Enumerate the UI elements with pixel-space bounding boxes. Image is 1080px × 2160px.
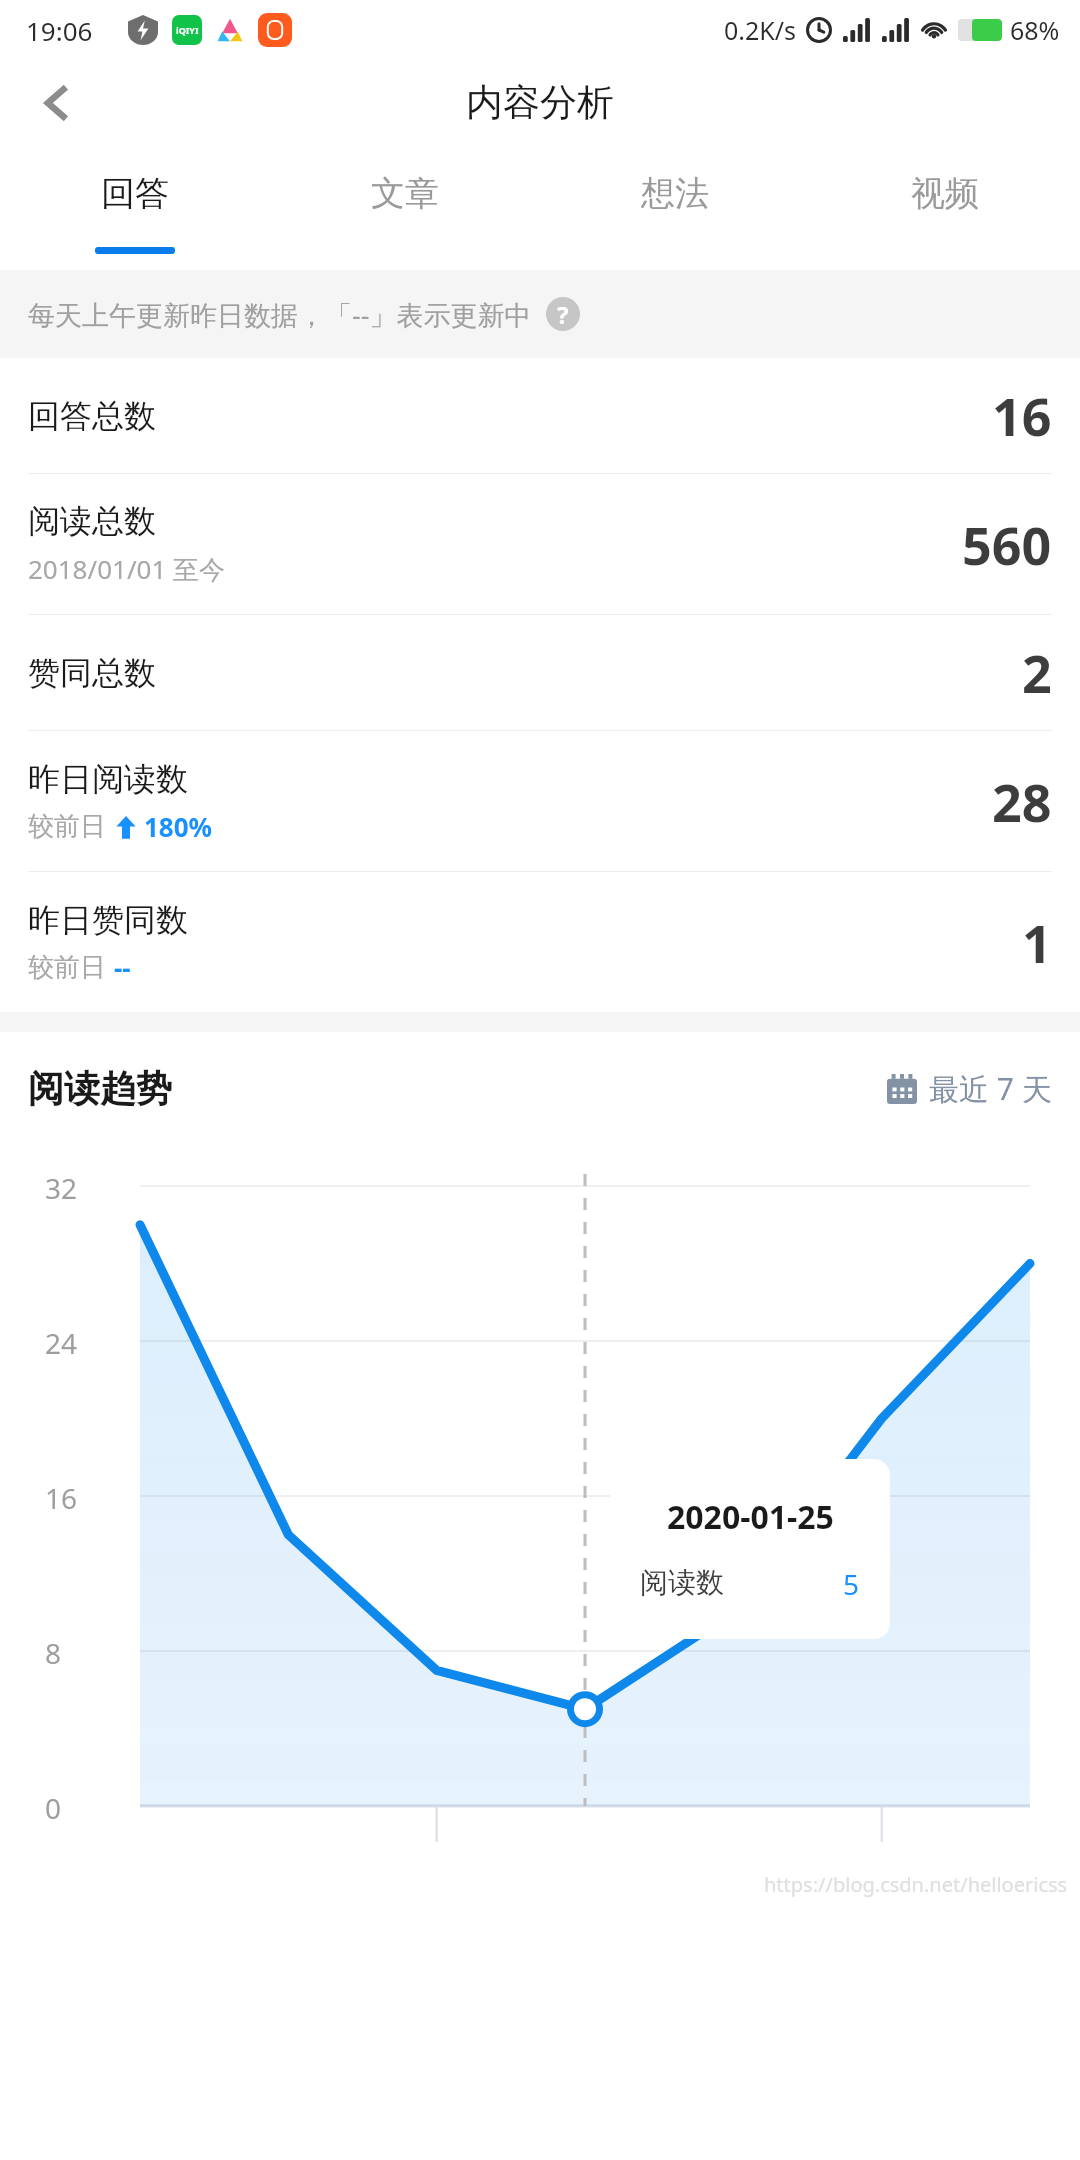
staticText: 560 [962, 509, 1052, 580]
staticText: 昨日赞同数 [28, 900, 188, 940]
staticText: 文章 [371, 172, 439, 215]
button[interactable]: 返回 [24, 71, 88, 135]
staticText: 19:06 [26, 13, 93, 48]
staticText: 想法 [641, 172, 709, 215]
staticText: https://blog.csdn.net/helloericss [764, 1871, 1068, 1898]
staticText: 68% [1010, 13, 1060, 47]
staticText: 16 [992, 380, 1052, 451]
staticText: 28 [992, 766, 1052, 837]
button[interactable]: 帮助 [546, 297, 580, 331]
staticText: ? [557, 298, 569, 331]
button[interactable]: 最近 7 天 [887, 1068, 1052, 1109]
staticText: 视频 [911, 172, 979, 215]
staticText: 0.2K/s [724, 13, 797, 47]
button[interactable]: 想法 [540, 145, 810, 270]
staticText: 每天上午更新昨日数据，「--」表示更新中 [28, 296, 532, 333]
staticText: 较前日 [28, 810, 106, 843]
button[interactable]: 昨日阅读数 [28, 731, 1052, 871]
staticText: 2018/01/01 至今 [28, 551, 226, 587]
staticText: 32 [44, 1169, 77, 1207]
staticText: 180% [144, 809, 213, 844]
staticText: 1 [1022, 907, 1052, 978]
staticText: 2020-01-25 [667, 1495, 834, 1539]
staticText: 2 [1022, 637, 1052, 708]
staticText: 24 [44, 1324, 77, 1362]
button[interactable]: 回答总数 [28, 358, 1052, 473]
staticText: 0 [44, 1789, 61, 1827]
staticText: 阅读总数 [28, 501, 156, 541]
staticText: 赞同总数 [28, 653, 156, 693]
button[interactable]: 回答 [0, 145, 270, 270]
staticText: 8 [44, 1634, 61, 1672]
staticText: 5 [843, 1565, 860, 1603]
button[interactable]: 视频 [810, 145, 1080, 270]
staticText: 回答总数 [28, 396, 156, 436]
button[interactable]: 赞同总数 [28, 615, 1052, 730]
staticText: -- [114, 950, 131, 985]
staticText: 最近 7 天 [929, 1068, 1052, 1109]
staticText: 内容分析 [466, 79, 614, 126]
staticText: 回答 [101, 172, 169, 215]
button[interactable]: 昨日赞同数 [28, 872, 1052, 1012]
staticText: 昨日阅读数 [28, 759, 188, 799]
button[interactable]: 阅读总数 [28, 474, 1052, 614]
staticText: iQIYI [176, 24, 199, 36]
staticText: 阅读趋势 [28, 1066, 172, 1111]
staticText: 16 [44, 1479, 77, 1517]
button[interactable]: 文章 [270, 145, 540, 270]
staticText: 阅读数 [640, 1565, 724, 1600]
staticText: 较前日 [28, 951, 106, 984]
